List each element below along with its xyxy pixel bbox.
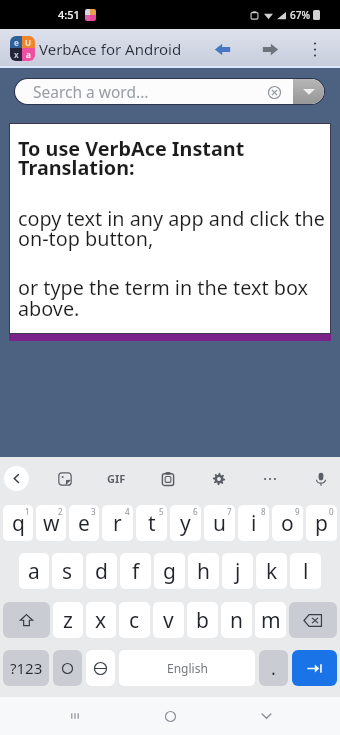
- staticText: b: [196, 606, 209, 635]
- button[interactable]: p: [306, 505, 337, 541]
- staticText: y: [180, 509, 191, 538]
- button[interactable]: d: [86, 553, 117, 589]
- staticText: e: [78, 509, 90, 538]
- staticText: i: [251, 509, 257, 538]
- staticText: above.: [18, 295, 80, 322]
- staticText: s: [62, 557, 73, 586]
- staticText: 0: [329, 506, 334, 517]
- button[interactable]: Search a word...: [15, 79, 324, 104]
- staticText: To use VerbAce Instant: [18, 135, 245, 162]
- staticText: English: [167, 660, 208, 676]
- button[interactable]: j: [222, 553, 253, 589]
- staticText: 4: [125, 506, 130, 517]
- staticText: z: [63, 606, 73, 635]
- staticText: 4:51: [58, 7, 80, 22]
- button[interactable]: Enter: [292, 650, 337, 686]
- button[interactable]: i: [238, 505, 269, 541]
- staticText: j: [235, 557, 241, 586]
- staticText: Translation:: [18, 154, 135, 181]
- button[interactable]: z: [53, 602, 83, 638]
- staticText: on-top button,: [18, 225, 154, 252]
- staticText: .: [271, 656, 276, 681]
- button[interactable]: Change language: [86, 650, 115, 686]
- staticText: v: [163, 606, 174, 635]
- button[interactable]: Voice input: [306, 466, 336, 492]
- staticText: m: [261, 606, 281, 635]
- button[interactable]: h: [188, 553, 219, 589]
- button[interactable]: w: [36, 505, 66, 541]
- staticText: l: [303, 557, 309, 586]
- button[interactable]: a: [19, 553, 49, 589]
- button[interactable]: Clipboard: [153, 466, 183, 492]
- staticText: VerbAce for Android: [39, 39, 182, 59]
- staticText: a: [26, 49, 31, 60]
- staticText: x: [95, 606, 107, 635]
- button[interactable]: English: [119, 650, 255, 686]
- staticText: f: [132, 557, 140, 586]
- staticText: 5: [159, 506, 164, 517]
- button[interactable]: Shift: [3, 602, 50, 638]
- button[interactable]: q: [3, 505, 33, 541]
- staticText: 1: [25, 506, 30, 517]
- button[interactable]: u: [204, 505, 235, 541]
- button[interactable]: Settings: [204, 466, 234, 492]
- button[interactable]: More options: [294, 32, 336, 66]
- button[interactable]: ?123: [3, 650, 49, 686]
- button[interactable]: Back: [245, 697, 287, 735]
- button[interactable]: Emoji: [53, 650, 82, 686]
- button[interactable]: Back: [198, 32, 246, 66]
- button[interactable]: l: [290, 553, 321, 589]
- button[interactable]: s: [52, 553, 83, 589]
- button[interactable]: Stickers: [50, 466, 80, 492]
- staticText: copy text in any app and click the: [18, 205, 326, 232]
- staticText: p: [315, 509, 328, 538]
- staticText: 6: [193, 506, 198, 517]
- staticText: U: [25, 37, 32, 48]
- button[interactable]: t: [136, 505, 167, 541]
- staticText: u: [213, 509, 226, 538]
- staticText: h: [197, 557, 210, 586]
- staticText: GIF: [107, 471, 126, 486]
- staticText: a: [28, 557, 40, 586]
- button[interactable]: b: [187, 602, 218, 638]
- button[interactable]: e: [69, 505, 99, 541]
- button[interactable]: f: [120, 553, 151, 589]
- button[interactable]: Backspace: [289, 602, 337, 638]
- button[interactable]: x: [86, 602, 116, 638]
- button[interactable]: m: [255, 602, 286, 638]
- button[interactable]: y: [170, 505, 201, 541]
- staticText: t: [148, 509, 156, 538]
- button[interactable]: k: [256, 553, 287, 589]
- staticText: q: [12, 509, 25, 538]
- staticText: c: [129, 606, 140, 635]
- staticText: 2: [58, 506, 63, 517]
- staticText: r: [113, 509, 122, 538]
- button[interactable]: g: [154, 553, 185, 589]
- staticText: e: [14, 37, 19, 48]
- button[interactable]: .: [259, 650, 288, 686]
- button[interactable]: Recent apps: [54, 697, 96, 735]
- staticText: 7: [227, 506, 232, 517]
- staticText: 3: [91, 506, 96, 517]
- button[interactable]: Clear: [256, 81, 292, 103]
- button[interactable]: v: [153, 602, 184, 638]
- staticText: n: [230, 606, 243, 635]
- staticText: g: [163, 557, 176, 586]
- button[interactable]: n: [221, 602, 252, 638]
- staticText: 9: [295, 506, 300, 517]
- button[interactable]: Home: [149, 697, 191, 735]
- staticText: or type the term in the text box: [18, 274, 308, 301]
- button[interactable]: GIF: [101, 466, 131, 491]
- button[interactable]: o: [272, 505, 303, 541]
- staticText: w: [43, 509, 60, 538]
- button[interactable]: Collapse toolbar: [4, 466, 29, 491]
- button[interactable]: c: [119, 602, 150, 638]
- staticText: o: [281, 509, 294, 538]
- staticText: d: [95, 557, 108, 586]
- button[interactable]: More: [255, 466, 285, 492]
- button[interactable]: Show options: [293, 79, 324, 104]
- staticText: 8: [261, 506, 266, 517]
- button[interactable]: r: [102, 505, 133, 541]
- staticText: ?123: [10, 658, 43, 678]
- button[interactable]: Forward: [246, 32, 294, 66]
